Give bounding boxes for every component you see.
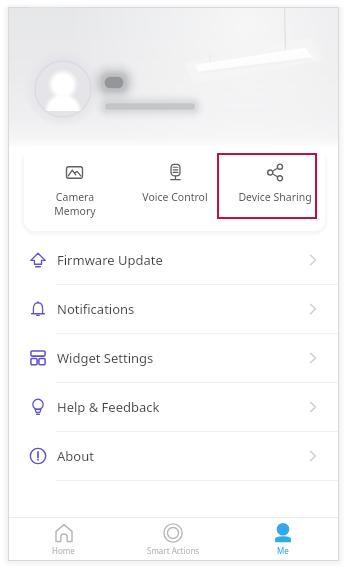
staticText: Firmware Update bbox=[57, 251, 163, 269]
staticText: Camera Memory bbox=[54, 190, 96, 218]
button[interactable]: Smart Actions bbox=[118, 518, 228, 560]
button[interactable]: Me bbox=[228, 518, 338, 560]
button[interactable]: Camera Memory bbox=[24, 146, 125, 218]
button[interactable]: Firmware Update bbox=[9, 236, 338, 285]
button[interactable]: Voice Control bbox=[125, 146, 225, 204]
button[interactable]: Device Sharing bbox=[225, 146, 325, 204]
button[interactable]: Home bbox=[9, 518, 118, 560]
staticText: About bbox=[57, 447, 94, 465]
staticText: Voice Control bbox=[142, 190, 208, 204]
button[interactable]: About bbox=[9, 432, 338, 481]
staticText: Device Sharing bbox=[238, 190, 312, 204]
button[interactable]: Help & Feedback bbox=[9, 383, 338, 432]
staticText: Me bbox=[277, 545, 289, 556]
staticText: Help & Feedback bbox=[57, 398, 160, 416]
button[interactable]: Widget Settings bbox=[9, 334, 338, 383]
staticText: Widget Settings bbox=[57, 349, 154, 367]
staticText: Notifications bbox=[57, 300, 135, 318]
staticText: Home bbox=[52, 545, 75, 556]
staticText: Smart Actions bbox=[147, 545, 200, 556]
button[interactable]: Notifications bbox=[9, 285, 338, 334]
